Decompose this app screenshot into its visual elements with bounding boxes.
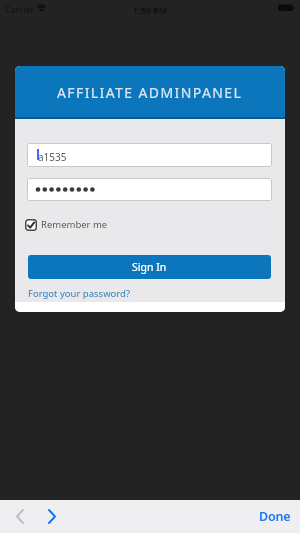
staticText: AFFILIATE ADMINPANEL [57,83,243,102]
button[interactable] [27,178,272,201]
staticText: Done [259,508,291,525]
staticText: 1:59 PM [133,4,168,16]
button[interactable]: a1535 [27,143,272,167]
button[interactable] [8,504,32,528]
button[interactable]: Forgot your password? [28,287,131,300]
button[interactable]: Done [259,508,291,525]
staticText: Remember me [41,218,108,231]
button[interactable]: Remember me [25,218,108,231]
staticText: Sign In [132,260,167,274]
button[interactable]: Sign In [28,255,271,279]
staticText: Carrier [5,3,35,15]
staticText: a1535 [38,150,67,164]
button[interactable] [40,504,64,528]
